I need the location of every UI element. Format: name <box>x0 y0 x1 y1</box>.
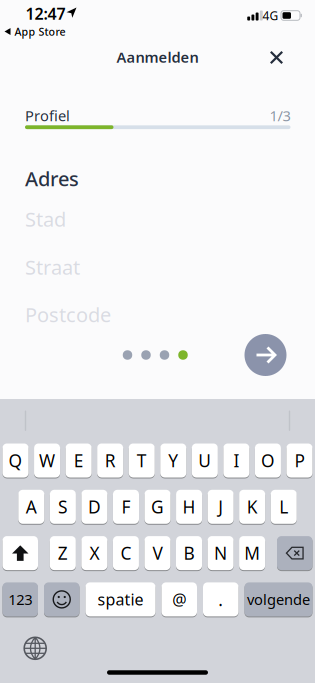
staticText: Z <box>58 542 68 565</box>
button[interactable]: W <box>34 443 60 478</box>
button[interactable]: A <box>18 489 44 524</box>
staticText: W <box>39 449 55 472</box>
button[interactable]: Next keyboard <box>20 633 50 663</box>
staticText: E <box>74 449 84 472</box>
button[interactable]: J <box>208 489 234 524</box>
button[interactable]: 123 <box>2 582 38 617</box>
staticText: T <box>137 449 147 472</box>
staticText: P <box>294 449 304 472</box>
button[interactable]: spatie <box>85 582 155 617</box>
button[interactable]: . <box>203 582 238 617</box>
button[interactable]: C <box>113 536 139 571</box>
staticText: M <box>244 542 260 565</box>
staticText: volgende <box>247 590 310 609</box>
staticText: 123 <box>8 590 32 609</box>
staticText: Postcode <box>25 301 111 328</box>
staticText: 4G <box>262 7 278 23</box>
staticText: O <box>261 449 275 472</box>
button[interactable]: L <box>271 489 297 524</box>
staticText: N <box>214 542 227 565</box>
staticText: R <box>105 449 116 472</box>
button[interactable]: G <box>144 489 171 524</box>
button[interactable]: Next <box>244 334 286 376</box>
staticText: I <box>233 449 239 472</box>
button[interactable]: O <box>255 443 281 478</box>
button[interactable]: App Store <box>2 24 65 39</box>
staticText: U <box>198 449 211 472</box>
staticText: App Store <box>14 24 65 39</box>
staticText: Adres <box>25 165 79 192</box>
button[interactable]: Q <box>2 443 29 478</box>
button[interactable]: E <box>66 443 92 478</box>
button[interactable]: M <box>239 536 265 571</box>
button[interactable]: S <box>50 489 76 524</box>
button[interactable]: D <box>81 489 107 524</box>
button[interactable]: B <box>176 536 202 571</box>
staticText: Aanmelden <box>116 47 198 67</box>
button[interactable]: Shift <box>2 536 38 571</box>
button[interactable]: Y <box>160 443 186 478</box>
staticText: Straat <box>25 254 80 280</box>
staticText: Stad <box>25 206 66 232</box>
staticText: X <box>89 542 99 565</box>
button[interactable]: N <box>207 536 234 571</box>
button[interactable]: U <box>192 443 218 478</box>
button[interactable]: K <box>239 489 265 524</box>
staticText: V <box>152 542 162 565</box>
button[interactable]: H <box>176 489 202 524</box>
staticText: Profiel <box>25 106 70 125</box>
button[interactable]: Stad <box>25 204 290 234</box>
staticText: S <box>58 495 68 518</box>
staticText: B <box>183 542 194 565</box>
staticText: A <box>26 495 37 518</box>
button[interactable]: P <box>286 443 312 478</box>
staticText: @ <box>172 589 186 610</box>
staticText: D <box>88 495 101 518</box>
staticText: Y <box>168 449 178 472</box>
staticText: Q <box>8 449 22 472</box>
button[interactable]: F <box>113 489 139 524</box>
staticText: G <box>151 495 164 518</box>
staticText: spatie <box>97 589 143 610</box>
button[interactable]: V <box>144 536 170 571</box>
button[interactable]: Postcode <box>25 299 290 329</box>
button[interactable]: Straat <box>25 252 290 282</box>
staticText: F <box>121 495 130 518</box>
button[interactable]: Delete <box>277 536 312 571</box>
button[interactable]: volgende <box>244 582 312 617</box>
button[interactable]: T <box>129 443 155 478</box>
staticText: . <box>218 588 223 611</box>
staticText: J <box>218 495 223 518</box>
staticText: 1/3 <box>269 106 290 125</box>
button[interactable]: Emoji <box>44 582 79 617</box>
staticText: C <box>120 542 131 565</box>
button[interactable]: X <box>81 536 107 571</box>
button[interactable]: I <box>223 443 249 478</box>
staticText: 12:47 <box>25 3 65 24</box>
staticText: H <box>183 495 196 518</box>
staticText: L <box>279 495 288 518</box>
button[interactable]: Close <box>270 51 283 64</box>
button[interactable]: @ <box>161 582 197 617</box>
button[interactable]: R <box>97 443 123 478</box>
staticText: K <box>247 495 258 518</box>
button[interactable]: Z <box>50 536 76 571</box>
